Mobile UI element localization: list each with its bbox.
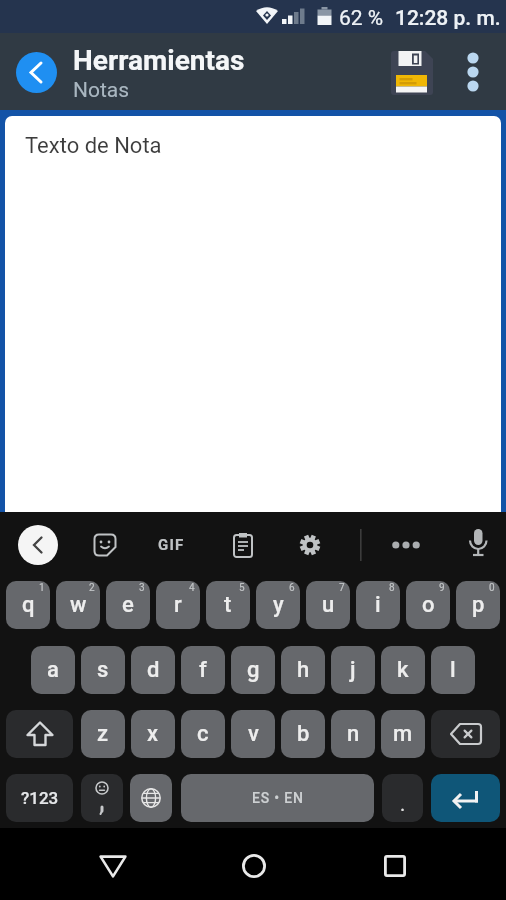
button[interactable]: GIF bbox=[150, 528, 192, 562]
staticText: g bbox=[247, 657, 260, 683]
staticText: w bbox=[70, 592, 87, 618]
button[interactable] bbox=[431, 774, 500, 822]
staticText: 3 bbox=[139, 582, 145, 594]
staticText: c bbox=[197, 721, 209, 747]
staticText: i bbox=[375, 592, 381, 618]
staticText: v bbox=[248, 721, 259, 747]
staticText: d bbox=[147, 657, 160, 683]
staticText: s bbox=[97, 657, 109, 683]
staticText: a bbox=[47, 657, 59, 683]
staticText: 5 bbox=[239, 582, 245, 594]
button[interactable] bbox=[431, 710, 500, 758]
button[interactable]: q bbox=[6, 581, 50, 629]
button[interactable]: p bbox=[456, 581, 500, 629]
staticText: q bbox=[22, 592, 35, 618]
staticText: Herramientas bbox=[73, 44, 245, 77]
staticText: n bbox=[347, 721, 360, 747]
staticText: 8 bbox=[389, 582, 395, 594]
staticText: o bbox=[422, 592, 435, 618]
button[interactable] bbox=[130, 774, 172, 822]
staticText: j bbox=[350, 657, 356, 683]
button[interactable] bbox=[293, 528, 327, 562]
button[interactable] bbox=[385, 46, 439, 100]
staticText: l bbox=[450, 657, 456, 683]
staticText: e bbox=[122, 592, 134, 618]
staticText: 1 bbox=[39, 582, 45, 594]
staticText: 4 bbox=[189, 582, 195, 594]
button[interactable] bbox=[6, 710, 73, 758]
staticText: GIF bbox=[158, 536, 185, 554]
button[interactable]: d bbox=[131, 646, 175, 694]
button[interactable]: u bbox=[306, 581, 350, 629]
button[interactable] bbox=[89, 842, 137, 890]
button[interactable]: t bbox=[206, 581, 250, 629]
button[interactable]: h bbox=[281, 646, 325, 694]
button[interactable]: y bbox=[256, 581, 300, 629]
button[interactable]: k bbox=[381, 646, 425, 694]
staticText: 62 % bbox=[339, 6, 384, 31]
button[interactable]: i bbox=[356, 581, 400, 629]
staticText: Texto de Nota bbox=[25, 133, 162, 159]
button[interactable] bbox=[81, 774, 123, 822]
button[interactable]: s bbox=[81, 646, 125, 694]
button[interactable] bbox=[88, 528, 122, 562]
staticText: z bbox=[97, 721, 109, 747]
button[interactable]: a bbox=[31, 646, 75, 694]
staticText: f bbox=[199, 657, 207, 683]
staticText: k bbox=[397, 657, 409, 683]
staticText: m bbox=[393, 721, 413, 747]
button[interactable]: r bbox=[156, 581, 200, 629]
button[interactable] bbox=[16, 52, 57, 93]
button[interactable] bbox=[452, 45, 494, 99]
staticText: y bbox=[273, 592, 284, 618]
button[interactable]: j bbox=[331, 646, 375, 694]
staticText: 6 bbox=[289, 582, 295, 594]
button[interactable]: w bbox=[56, 581, 100, 629]
button[interactable]: ES • EN bbox=[181, 774, 374, 822]
button[interactable]: e bbox=[106, 581, 150, 629]
staticText: 12:28 p. m. bbox=[395, 6, 501, 31]
staticText: 9 bbox=[439, 582, 445, 594]
button[interactable]: l bbox=[431, 646, 475, 694]
staticText: 0 bbox=[489, 582, 495, 594]
button[interactable]: o bbox=[406, 581, 450, 629]
button[interactable] bbox=[389, 528, 423, 562]
button[interactable]: ?123 bbox=[6, 774, 73, 822]
staticText: p bbox=[472, 592, 485, 618]
staticText: . bbox=[400, 792, 406, 815]
button[interactable]: g bbox=[231, 646, 275, 694]
button[interactable]: x bbox=[131, 710, 175, 758]
staticText: ES • EN bbox=[252, 790, 304, 806]
staticText: u bbox=[322, 592, 335, 618]
button[interactable]: Texto de Nota bbox=[5, 116, 501, 512]
staticText: r bbox=[174, 592, 182, 618]
staticText: b bbox=[297, 721, 310, 747]
staticText: Notas bbox=[73, 78, 130, 103]
button[interactable]: m bbox=[381, 710, 425, 758]
button[interactable] bbox=[371, 842, 419, 890]
staticText: 2 bbox=[89, 582, 95, 594]
button[interactable]: n bbox=[331, 710, 375, 758]
button[interactable] bbox=[461, 526, 495, 560]
button[interactable] bbox=[230, 842, 278, 890]
button[interactable] bbox=[226, 528, 260, 562]
button[interactable] bbox=[18, 525, 58, 565]
button[interactable]: b bbox=[281, 710, 325, 758]
staticText: x bbox=[147, 721, 159, 747]
button[interactable]: c bbox=[181, 710, 225, 758]
button[interactable]: f bbox=[181, 646, 225, 694]
staticText: t bbox=[224, 592, 232, 618]
staticText: 7 bbox=[339, 582, 345, 594]
button[interactable]: . bbox=[382, 774, 423, 822]
staticText: ?123 bbox=[21, 788, 59, 808]
staticText: h bbox=[297, 657, 310, 683]
button[interactable]: v bbox=[231, 710, 275, 758]
button[interactable]: z bbox=[81, 710, 125, 758]
